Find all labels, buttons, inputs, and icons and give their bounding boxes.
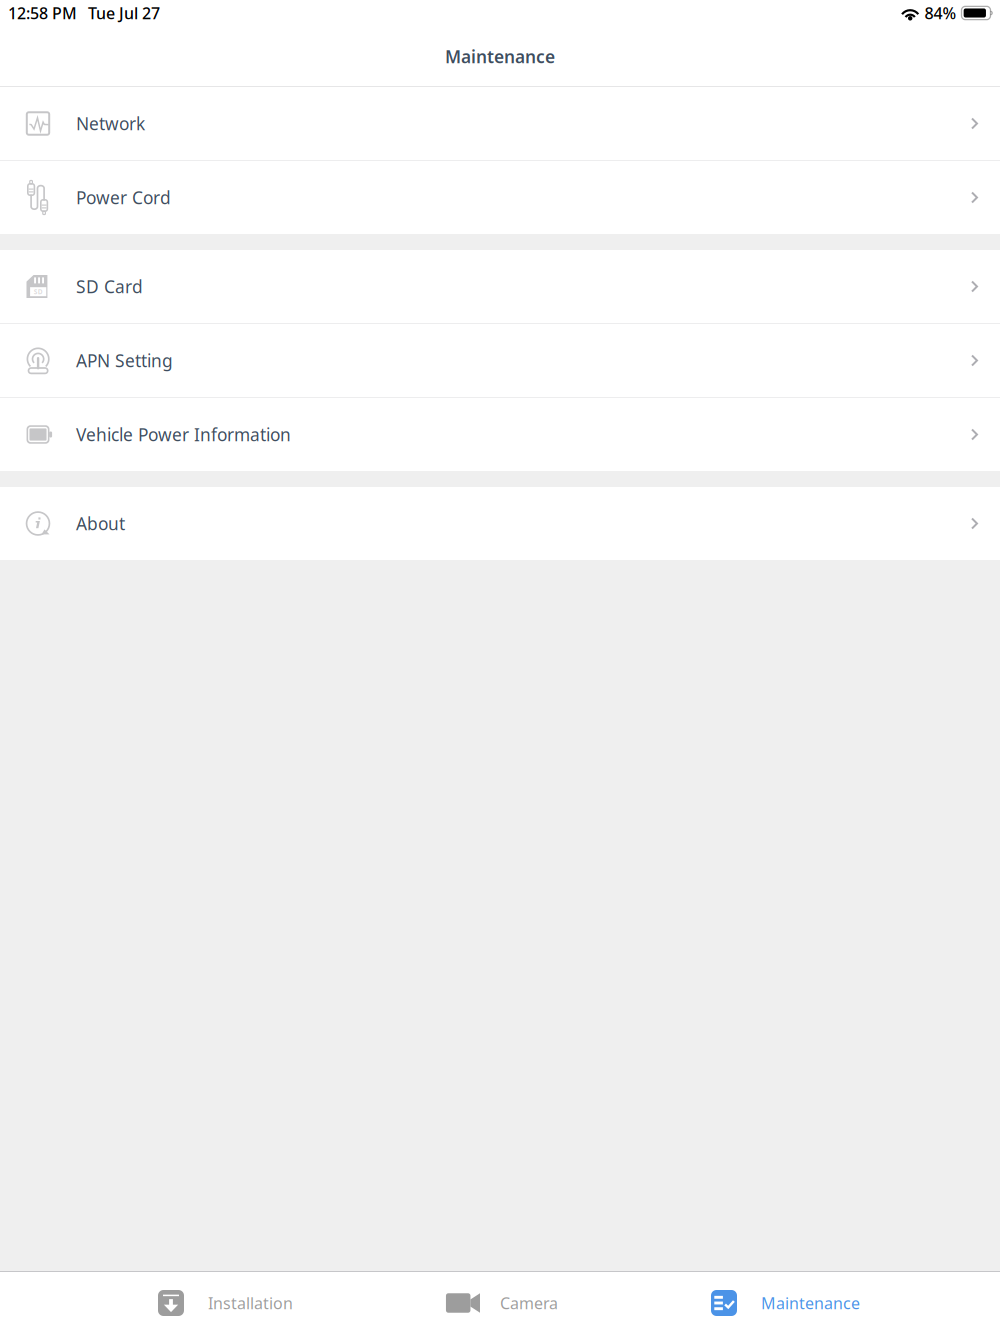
staticText: Network xyxy=(76,112,145,135)
button[interactable]: Maintenance xyxy=(711,1272,860,1334)
staticText: Tue Jul 27 xyxy=(88,2,160,24)
staticText: Maintenance xyxy=(761,1292,860,1314)
button[interactable]: Installation xyxy=(158,1272,293,1334)
button[interactable]: Power Cord xyxy=(0,161,1000,234)
staticText: About xyxy=(76,512,125,535)
staticText: APN Setting xyxy=(76,349,173,372)
staticText: Power Cord xyxy=(76,186,171,209)
staticText: 12:58 PM xyxy=(8,2,77,24)
button[interactable]: SD xyxy=(0,250,1000,323)
button[interactable]: Network xyxy=(0,87,1000,160)
button[interactable]: About xyxy=(0,487,1000,560)
staticText: Installation xyxy=(208,1292,293,1314)
button[interactable]: Camera xyxy=(446,1272,558,1334)
staticText: SD xyxy=(34,287,43,296)
button[interactable]: Vehicle Power Information xyxy=(0,398,1000,471)
staticText: SD Card xyxy=(76,275,143,298)
staticText: Camera xyxy=(500,1292,558,1314)
staticText: Maintenance xyxy=(445,45,555,68)
button[interactable]: APN Setting xyxy=(0,324,1000,397)
staticText: 84% xyxy=(924,2,956,24)
staticText: Vehicle Power Information xyxy=(76,423,291,446)
